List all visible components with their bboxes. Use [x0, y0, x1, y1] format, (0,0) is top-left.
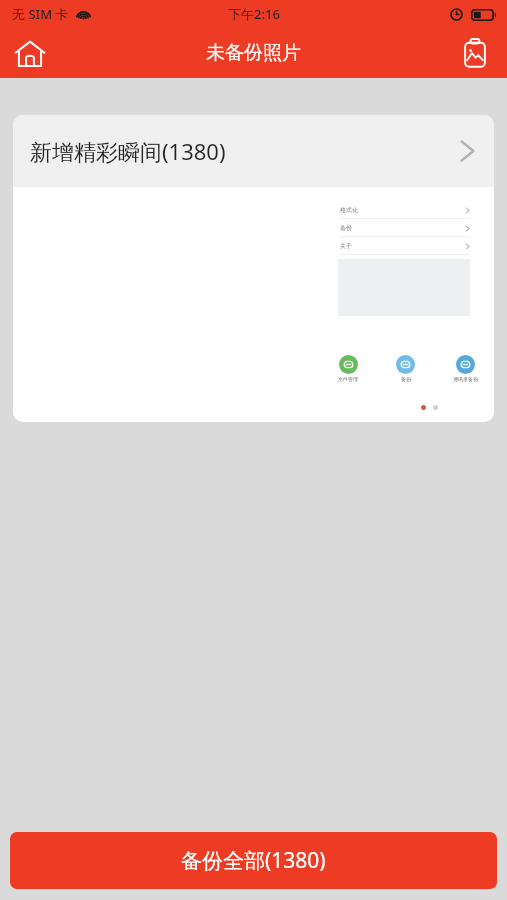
staticText: 新增精彩瞬间(1380)	[30, 136, 226, 166]
button[interactable]	[456, 355, 475, 374]
button[interactable]	[396, 355, 415, 374]
staticText: 格式化	[340, 206, 358, 214]
button[interactable]: 备份全部(1380)	[10, 832, 497, 889]
staticText: 未备份照片	[206, 41, 301, 65]
staticText: 备份	[401, 376, 411, 382]
staticText: 关于	[340, 242, 352, 250]
staticText: 通讯录备份	[453, 376, 478, 382]
button[interactable]: Home	[8, 31, 52, 75]
staticText: 备份全部(1380)	[181, 846, 326, 875]
button[interactable]	[339, 355, 358, 374]
staticText: 无 SIM 卡	[12, 5, 69, 23]
staticText: 备份	[340, 224, 352, 232]
button[interactable]: 关于	[338, 237, 470, 255]
staticText: 下午2:16	[228, 5, 280, 23]
button[interactable]: USB storage photos	[453, 31, 497, 75]
button[interactable]: 格式化	[338, 201, 470, 219]
button[interactable]: 新增精彩瞬间(1380)	[13, 115, 494, 187]
button[interactable]: 备份	[338, 219, 470, 237]
staticText: 文件管理	[338, 376, 358, 382]
